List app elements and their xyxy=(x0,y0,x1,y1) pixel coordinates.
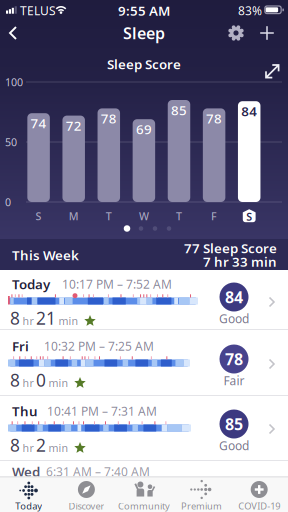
staticText: TELUS xyxy=(20,2,56,18)
staticText: 100 xyxy=(5,75,23,89)
staticText: Fri xyxy=(12,337,29,355)
staticText: M xyxy=(69,209,79,223)
staticText: Fair xyxy=(223,372,244,388)
staticText: 0 xyxy=(5,195,11,209)
button[interactable]: Add xyxy=(253,19,281,47)
staticText: 10:17 PM – 7:52 AM xyxy=(62,276,172,292)
staticText: 0 xyxy=(36,368,46,391)
staticText: 84 xyxy=(225,286,243,308)
staticText: This Week xyxy=(12,246,79,264)
staticText: 8 xyxy=(10,306,20,329)
staticText: 85 xyxy=(171,101,187,119)
staticText: 77 Sleep Score xyxy=(184,239,277,257)
staticText: 83% xyxy=(238,2,262,18)
staticText: hr xyxy=(22,314,33,328)
staticText: 6:31 AM – 7:40 AM xyxy=(46,463,150,479)
staticText: Good xyxy=(219,437,249,453)
button[interactable]: Premium xyxy=(173,476,230,512)
staticText: Today xyxy=(15,500,42,512)
staticText: min xyxy=(58,314,78,328)
staticText: Community xyxy=(118,500,170,512)
staticText: Sleep xyxy=(123,22,165,44)
button[interactable]: Fri xyxy=(0,329,288,395)
staticText: W xyxy=(139,209,149,223)
staticText: 72 xyxy=(66,117,82,134)
staticText: min xyxy=(48,376,68,390)
staticText: 2 xyxy=(36,433,46,456)
staticText: COVID-19 xyxy=(238,500,280,512)
button[interactable]: COVID-19 xyxy=(230,476,288,512)
staticText: 78 xyxy=(206,109,222,127)
staticText: Sleep Score xyxy=(107,55,181,73)
staticText: hr xyxy=(22,376,33,390)
staticText: Premium xyxy=(181,500,222,512)
staticText: 10:32 PM – 7:25 AM xyxy=(44,338,154,354)
staticText: 10:41 PM – 7:31 AM xyxy=(47,403,157,419)
button[interactable]: Settings xyxy=(222,19,250,47)
button[interactable]: Community xyxy=(115,476,173,512)
staticText: F xyxy=(211,209,217,223)
staticText: hr xyxy=(22,441,33,455)
staticText: Good xyxy=(219,310,249,326)
staticText: T xyxy=(176,209,182,223)
staticText: min xyxy=(48,441,68,455)
staticText: 9:55 AM xyxy=(118,2,170,19)
staticText: 8 xyxy=(10,368,20,391)
staticText: S xyxy=(36,209,42,223)
staticText: Wed xyxy=(12,463,40,480)
staticText: Discover xyxy=(68,500,104,512)
button[interactable]: Discover xyxy=(58,476,115,512)
staticText: 74 xyxy=(31,114,47,132)
staticText: 21 xyxy=(36,306,56,329)
staticText: 84 xyxy=(241,102,257,120)
staticText: S xyxy=(246,209,252,224)
staticText: 85 xyxy=(225,413,243,435)
staticText: Today xyxy=(12,275,50,293)
staticText: 78 xyxy=(225,348,243,370)
button[interactable]: Back xyxy=(0,19,26,47)
button[interactable]: Today xyxy=(0,476,58,512)
staticText: Thu xyxy=(12,402,38,420)
staticText: 8 xyxy=(10,433,20,456)
staticText: 78 xyxy=(101,109,117,127)
button[interactable]: Thu xyxy=(0,395,288,460)
button[interactable]: Today xyxy=(0,270,288,329)
staticText: T xyxy=(106,209,112,223)
button[interactable]: Expand xyxy=(263,62,281,80)
staticText: 7 hr 33 min xyxy=(203,253,277,270)
staticText: 69 xyxy=(136,120,152,138)
staticText: 50 xyxy=(5,135,17,149)
